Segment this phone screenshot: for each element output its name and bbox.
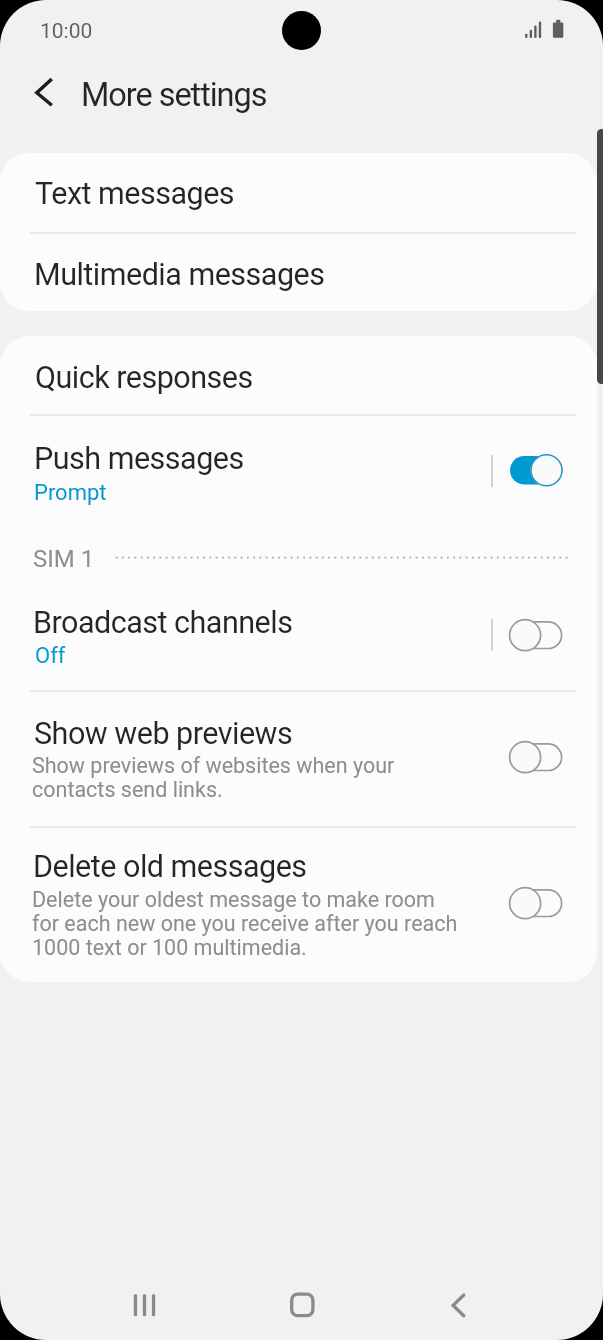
staticText: More settings <box>81 76 267 114</box>
staticText: Delete your oldest message to make room … <box>32 887 458 961</box>
button[interactable]: Broadcast channels <box>0 590 597 690</box>
staticText: Prompt <box>34 480 107 506</box>
staticText: SIM 1 <box>33 545 95 573</box>
staticText: Delete old messages <box>33 849 307 885</box>
staticText: Text messages <box>35 176 235 212</box>
staticText: Show previews of websites when your cont… <box>32 753 395 803</box>
button[interactable]: Home <box>256 1260 346 1340</box>
staticText: Show web previews <box>34 716 293 752</box>
staticText: Off <box>35 643 66 669</box>
button[interactable]: Text messages <box>0 153 597 232</box>
button[interactable]: Broadcast channels, off <box>499 609 572 665</box>
button[interactable]: Show web previews, off <box>499 731 572 787</box>
staticText: 10:00 <box>40 19 93 44</box>
button[interactable]: Delete old messages, off <box>499 877 572 933</box>
button[interactable]: Back <box>414 1260 504 1340</box>
staticText: Push messages <box>34 441 244 477</box>
button[interactable]: Push messages <box>0 415 597 519</box>
button[interactable]: Recent apps <box>99 1260 189 1340</box>
button[interactable]: Delete old messages <box>0 827 597 977</box>
staticText: Broadcast channels <box>33 605 293 641</box>
button[interactable]: Multimedia messages <box>0 232 597 311</box>
button[interactable]: Navigate up <box>16 65 72 121</box>
button[interactable]: Show web previews <box>0 691 597 826</box>
staticText: Quick responses <box>35 360 253 396</box>
button[interactable]: Quick responses <box>0 336 597 414</box>
staticText: Multimedia messages <box>34 257 325 293</box>
button[interactable]: Push messages, on <box>500 444 573 500</box>
